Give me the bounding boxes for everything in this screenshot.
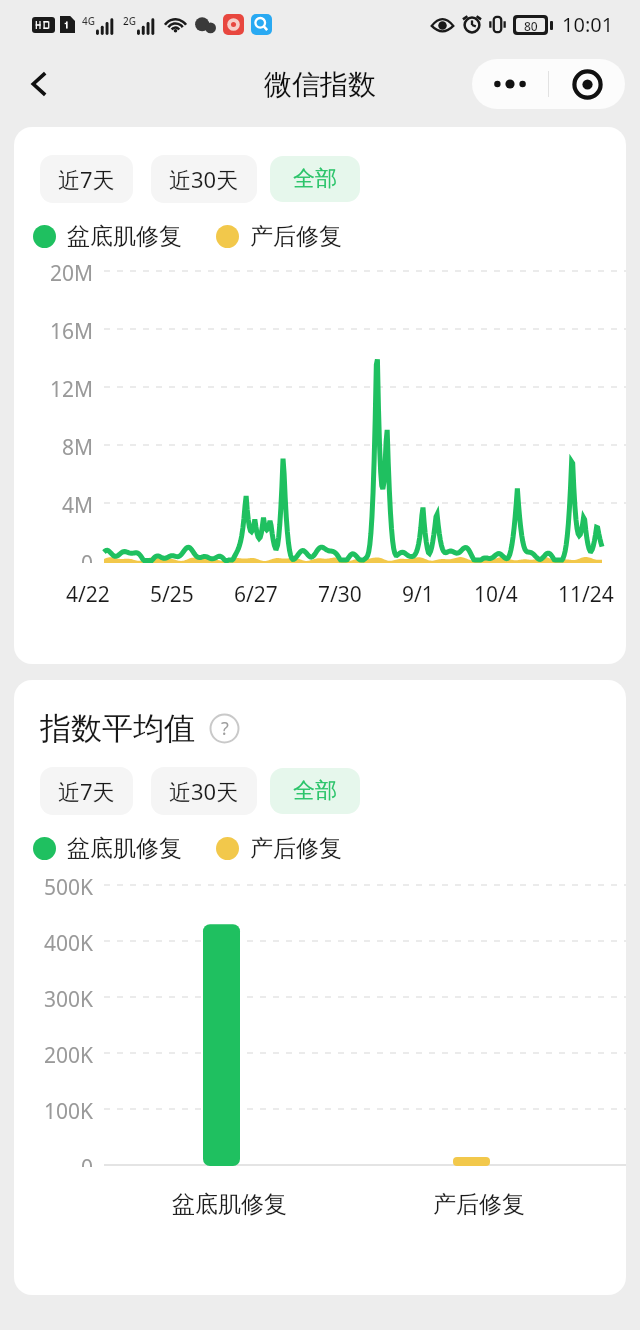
staticText: 0: [81, 549, 94, 563]
button[interactable]: More options and close: [472, 59, 625, 109]
staticText: 9/1: [402, 580, 434, 609]
staticText: 微信指数: [264, 67, 376, 102]
button[interactable]: 近30天: [151, 155, 257, 203]
staticText: 200K: [44, 1041, 94, 1070]
staticText: 盆底肌修复: [67, 222, 182, 251]
staticText: 80: [524, 18, 538, 32]
staticText: 盆底肌修复: [67, 834, 182, 863]
staticText: 4/22: [66, 580, 110, 609]
staticText: 12M: [50, 375, 94, 404]
staticText: 8M: [62, 433, 94, 462]
staticText: 100K: [44, 1097, 94, 1126]
staticText: 2G: [123, 14, 136, 28]
staticText: 5/25: [150, 580, 194, 609]
staticText: 20M: [50, 259, 94, 288]
button[interactable]: 全部: [270, 156, 360, 202]
staticText: 0: [81, 1153, 94, 1167]
staticText: 指数平均值: [40, 709, 195, 748]
button[interactable]: 近30天: [151, 767, 257, 815]
button[interactable]: 近7天: [40, 767, 133, 815]
staticText: 16M: [50, 317, 94, 346]
button[interactable]: Help: [209, 713, 240, 744]
staticText: 400K: [44, 929, 94, 958]
button[interactable]: 近7天: [40, 155, 133, 203]
staticText: 10:01: [562, 11, 614, 38]
staticText: 产后修复: [250, 834, 342, 863]
staticText: 10/4: [474, 580, 518, 609]
staticText: 4M: [62, 491, 94, 520]
staticText: 11/24: [558, 580, 614, 609]
staticText: ?: [221, 716, 229, 741]
button[interactable]: 全部: [270, 768, 360, 814]
staticText: 近30天: [169, 164, 239, 194]
staticText: 4G: [82, 14, 95, 28]
staticText: 近30天: [169, 776, 239, 806]
staticText: 6/27: [234, 580, 278, 609]
staticText: 盆底肌修复: [172, 1190, 287, 1219]
staticText: 全部: [293, 777, 337, 805]
staticText: 近7天: [58, 776, 115, 806]
staticText: 7/30: [318, 580, 362, 609]
staticText: 产后修复: [250, 222, 342, 251]
staticText: 500K: [44, 873, 94, 902]
staticText: 300K: [44, 985, 94, 1014]
button[interactable]: Back: [12, 56, 68, 112]
staticText: 近7天: [58, 164, 115, 194]
staticText: 产后修复: [433, 1190, 525, 1219]
staticText: 全部: [293, 165, 337, 193]
